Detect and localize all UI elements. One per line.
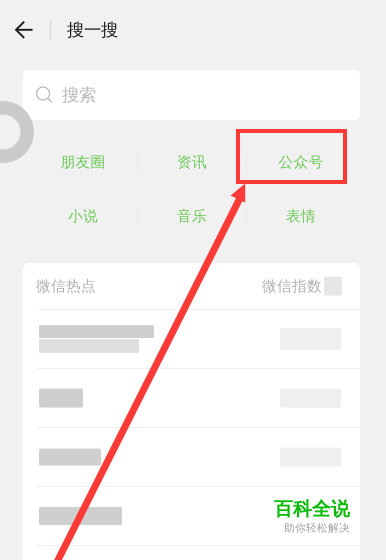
- button[interactable]: 小说: [29, 190, 137, 242]
- button[interactable]: Back: [5, 10, 50, 50]
- staticText: 资讯: [177, 153, 207, 171]
- button[interactable]: Trending item: [23, 369, 360, 427]
- button[interactable]: 资讯: [138, 136, 246, 188]
- button[interactable]: Trending item: [23, 310, 360, 368]
- staticText: 搜索: [62, 84, 96, 106]
- button[interactable]: 音乐: [138, 190, 246, 242]
- staticText: 朋友圈: [60, 153, 105, 171]
- staticText: 百科全说: [274, 497, 350, 520]
- staticText: 微信热点: [36, 277, 96, 295]
- button[interactable]: Trending item: [23, 428, 360, 486]
- button[interactable]: 朋友圈: [29, 136, 137, 188]
- staticText: 小说: [68, 207, 98, 225]
- button[interactable]: 表情: [247, 190, 355, 242]
- button[interactable]: 百科全说: [23, 487, 360, 545]
- staticText: 表情: [286, 207, 316, 225]
- staticText: 搜一搜: [67, 19, 118, 41]
- staticText: 微信指数: [262, 277, 322, 295]
- staticText: 音乐: [177, 207, 207, 225]
- staticText: 公众号: [278, 153, 323, 171]
- staticText: 助你轻松解决: [284, 521, 350, 534]
- button[interactable]: 公众号: [247, 136, 355, 188]
- button[interactable]: Trending item: [23, 546, 360, 560]
